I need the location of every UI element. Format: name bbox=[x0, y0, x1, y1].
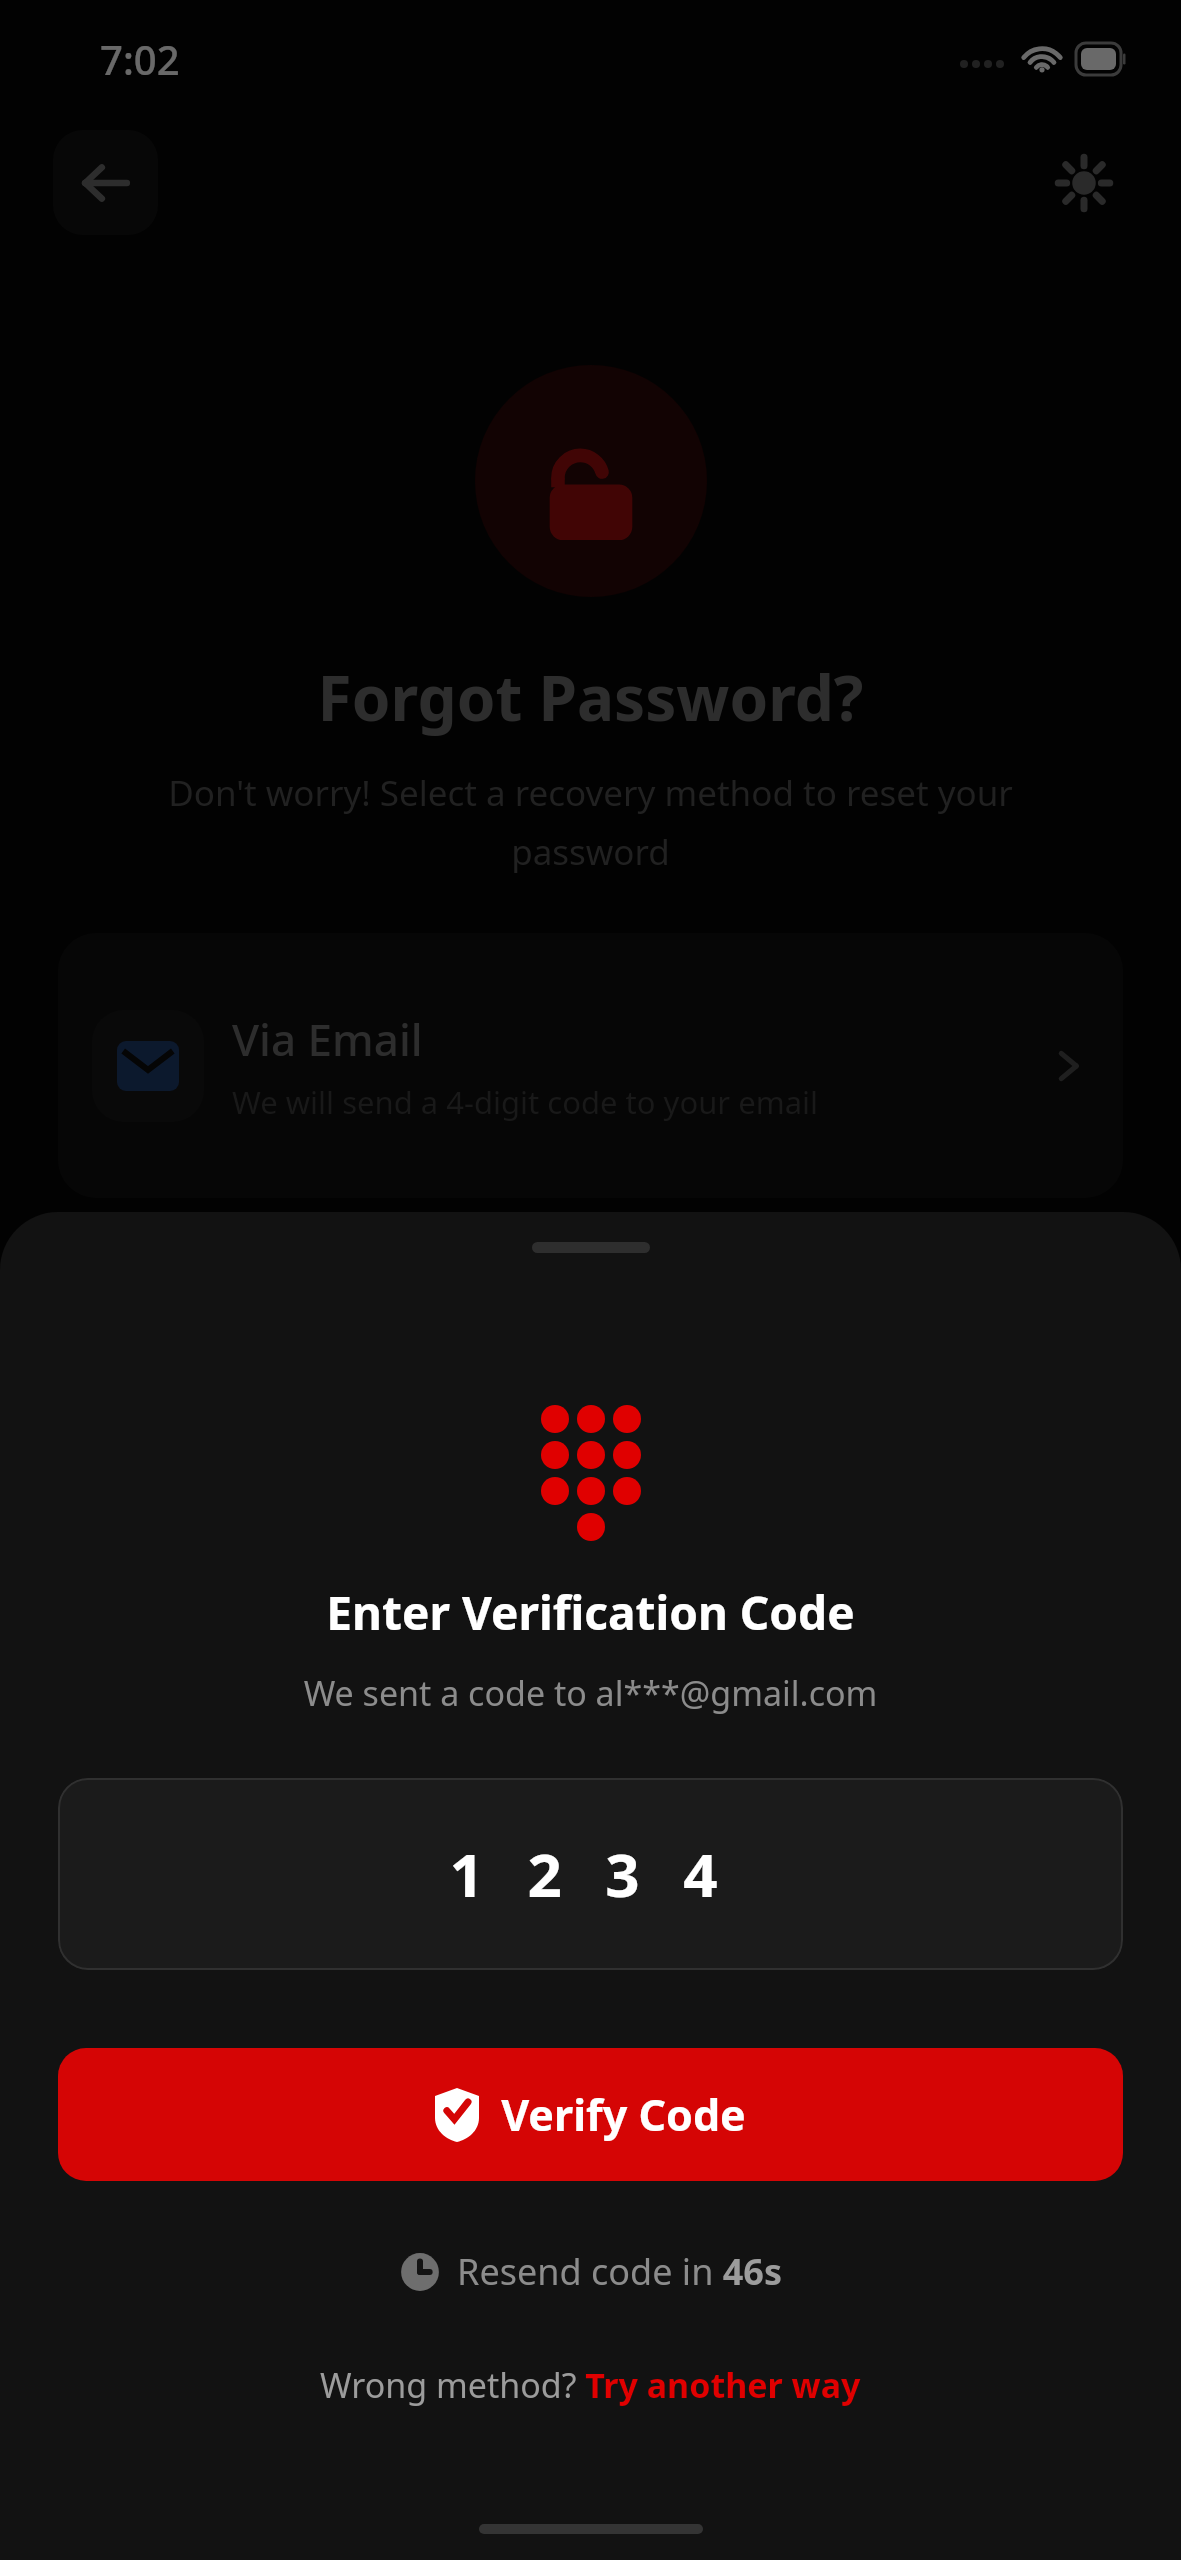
button[interactable]: Via Email bbox=[58, 933, 1123, 1198]
staticText: Wrong method? Try another way bbox=[320, 2362, 861, 2408]
staticText: We sent a code to al***@gmail.com bbox=[0, 1670, 1181, 1716]
staticText: 7:02 bbox=[100, 32, 180, 86]
staticText: We will send a 4-digit code to your emai… bbox=[232, 1081, 819, 1123]
button[interactable]: Back bbox=[53, 130, 158, 235]
staticText: Forgot Password? bbox=[0, 655, 1181, 739]
staticText: Via Email bbox=[232, 1009, 423, 1069]
button[interactable]: Wrong method? Try another way bbox=[300, 2352, 881, 2418]
button[interactable]: Resend code in 46s bbox=[375, 2237, 807, 2306]
staticText: Don't worry! Select a recovery method to… bbox=[55, 769, 1126, 875]
staticText: 1 2 3 4 bbox=[449, 1833, 732, 1915]
staticText: Enter Verification Code bbox=[0, 1581, 1181, 1644]
button[interactable]: Brightness bbox=[1042, 141, 1126, 225]
button[interactable]: 1 2 3 4 bbox=[58, 1778, 1123, 1970]
staticText: Verify Code bbox=[501, 2085, 746, 2144]
staticText: Resend code in 46s bbox=[457, 2247, 783, 2296]
button[interactable]: Verify Code bbox=[58, 2048, 1123, 2181]
